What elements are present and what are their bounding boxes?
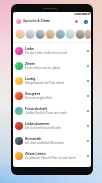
button[interactable]: Lustig — [13, 73, 91, 88]
staticText: Juckte Kör Kör Ernst und mehr — [25, 111, 67, 115]
button[interactable]: Zitate — [13, 58, 91, 73]
staticText: Morgenstund hat Frau dreist — [25, 81, 64, 85]
staticText: Es ist schön wie es glänzt — [25, 66, 61, 70]
button[interactable]: Romantik — [13, 133, 91, 148]
staticText: Songtext — [25, 92, 40, 96]
button[interactable] — [35, 26, 45, 42]
staticText: Ich liebe pünktlich Momente — [25, 141, 64, 145]
button[interactable] — [25, 26, 35, 42]
staticText: Der ist nur glücklich — [25, 96, 53, 100]
button[interactable] — [65, 26, 75, 42]
button[interactable] — [55, 26, 65, 42]
button[interactable] — [15, 26, 25, 42]
staticText: Liebe — [25, 47, 35, 51]
staticText: Liebeskummer — [25, 122, 50, 126]
staticText: Zitate Leben — [25, 152, 46, 156]
button[interactable]: Liebe — [13, 43, 91, 58]
staticText: Die Zeit heilt heute Wunde — [25, 126, 61, 130]
staticText: Lustig — [25, 77, 36, 81]
staticText: Freundschaft — [25, 107, 47, 111]
staticText: Für die Liebe, Liebe ist ein Lied — [25, 51, 67, 55]
button[interactable]: Liebeskummer — [13, 118, 91, 133]
button[interactable] — [75, 26, 85, 42]
button[interactable]: Profil — [16, 19, 21, 24]
button[interactable] — [45, 26, 55, 42]
button[interactable]: Freundschaft — [13, 103, 91, 118]
button[interactable]: Songtext — [13, 88, 91, 103]
button[interactable] — [85, 26, 91, 42]
staticText: Romantik — [25, 137, 41, 141]
staticText: Sprüche & Zitate — [23, 19, 50, 23]
button[interactable]: Zitate Leben — [13, 148, 91, 163]
staticText: Zu glänzen Platz & Plan ist und durch — [25, 156, 76, 160]
staticText: Zitate — [25, 62, 35, 66]
button[interactable]: Favoriten — [73, 18, 80, 25]
button[interactable]: Info — [82, 18, 89, 25]
